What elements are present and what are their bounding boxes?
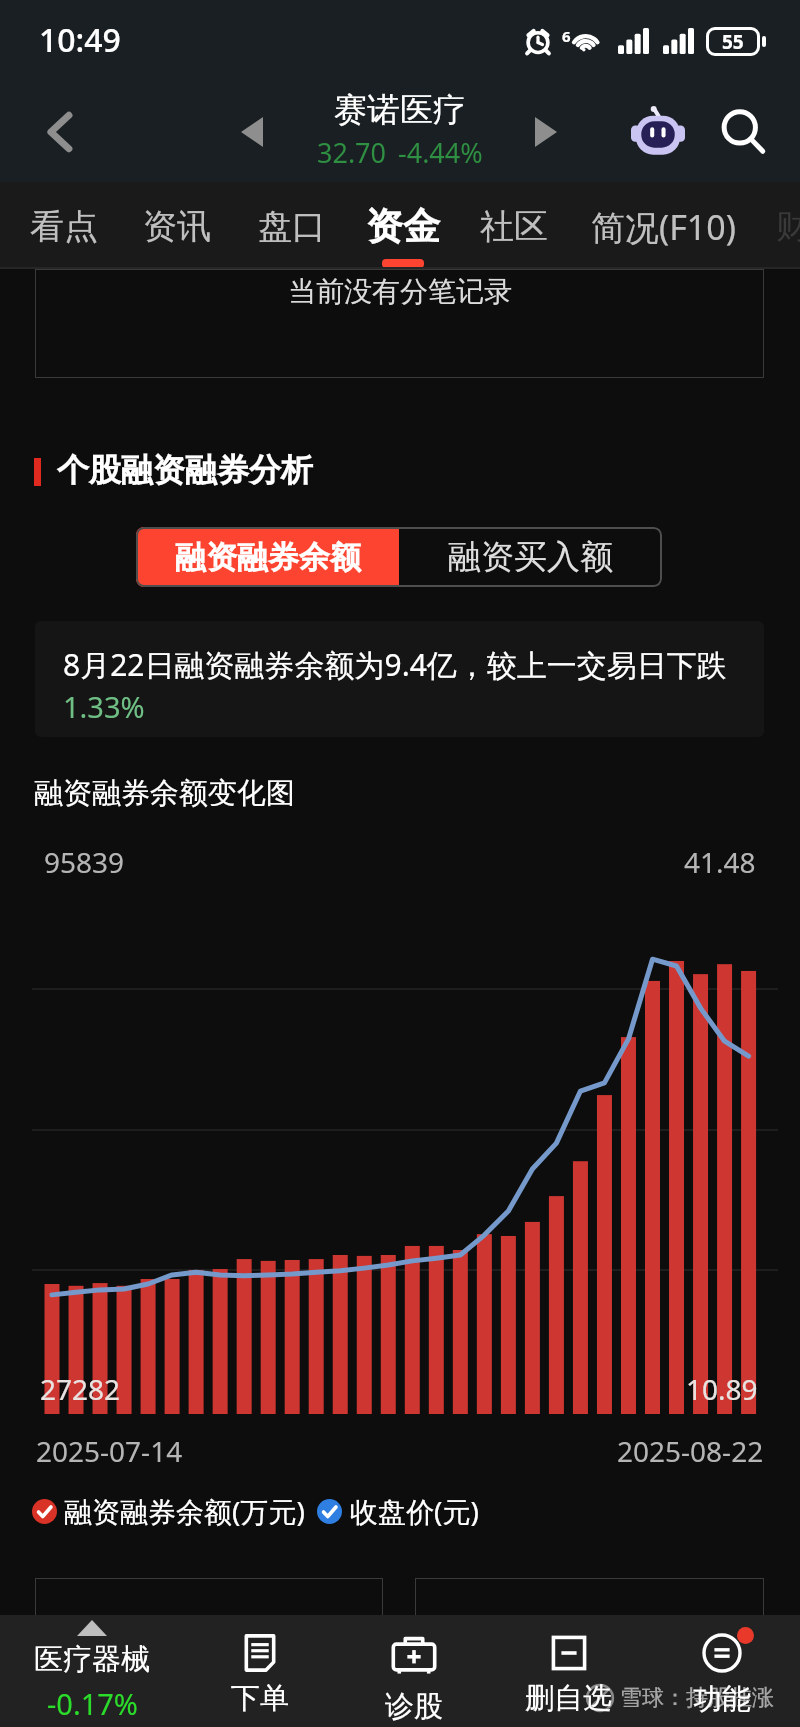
staticText: 95839 <box>44 843 125 881</box>
staticText: 10:49 <box>39 18 121 62</box>
staticText: 27282 <box>40 1370 121 1408</box>
staticText: 32.70 <box>317 134 387 171</box>
staticText: 10.89 <box>686 1370 758 1408</box>
button[interactable]: 诊股 <box>339 1615 489 1727</box>
button[interactable]: Previous stock <box>226 106 278 158</box>
staticText: 盘口 <box>258 205 326 248</box>
staticText: 8月22日融资融券余额为9.4亿，较上一交易日下跌 <box>63 644 727 685</box>
button[interactable]: 资讯 <box>143 182 211 269</box>
staticText: 医疗器械 <box>34 1641 150 1678</box>
button[interactable]: 功能 <box>647 1615 797 1727</box>
staticText: 融资融券余额(万元) <box>64 1492 305 1530</box>
staticText: 功能 <box>693 1681 751 1718</box>
button[interactable]: 盘口 <box>258 182 326 269</box>
staticText: 看点 <box>30 205 98 248</box>
staticText: 融资融券余额 <box>175 538 361 577</box>
button[interactable]: Next stock <box>520 106 572 158</box>
staticText: -0.17% <box>47 1684 138 1723</box>
staticText: 社区 <box>480 205 548 248</box>
button[interactable]: 看点 <box>30 182 98 269</box>
staticText: 赛诺医疗 <box>334 89 466 131</box>
staticText: 1.33% <box>63 687 145 726</box>
button[interactable]: 资金 <box>366 182 440 269</box>
button[interactable]: 医疗器械 <box>17 1615 167 1727</box>
staticText: 资讯 <box>143 205 211 248</box>
staticText: 资金 <box>366 203 440 250</box>
staticText: 收盘价(元) <box>350 1492 479 1530</box>
staticText: 诊股 <box>385 1688 443 1725</box>
button[interactable]: 融资融券余额 <box>136 527 399 587</box>
staticText: 财 <box>776 205 800 248</box>
button[interactable]: 财 <box>776 182 800 269</box>
staticText: 55 <box>722 29 744 55</box>
button[interactable]: 简况(F10) <box>591 182 736 269</box>
button[interactable]: 下单 <box>185 1615 335 1727</box>
staticText: -4.44% <box>398 134 483 171</box>
staticText: 融资融券余额变化图 <box>34 775 295 812</box>
staticText: 2025-07-14 <box>36 1432 183 1470</box>
staticText: 个股融资融券分析 <box>57 450 313 490</box>
staticText: 简况(F10) <box>591 204 736 250</box>
staticText: 雪球：持股挂涨 <box>620 1684 774 1712</box>
button[interactable]: Back <box>30 101 92 163</box>
staticText: 下单 <box>231 1680 289 1717</box>
staticText: 当前没有分笔记录 <box>288 274 512 309</box>
button[interactable]: Search <box>712 101 774 163</box>
staticText: 6 <box>562 26 571 46</box>
button[interactable]: 社区 <box>480 182 548 269</box>
staticText: 删自选 <box>525 1680 612 1717</box>
button[interactable]: 融资买入额 <box>399 527 662 587</box>
staticText: 41.48 <box>684 843 756 881</box>
button[interactable]: 删自选 <box>493 1615 643 1727</box>
button[interactable]: AI assistant <box>628 102 688 162</box>
staticText: 融资买入额 <box>448 536 613 578</box>
staticText: 2025-08-22 <box>617 1432 764 1470</box>
